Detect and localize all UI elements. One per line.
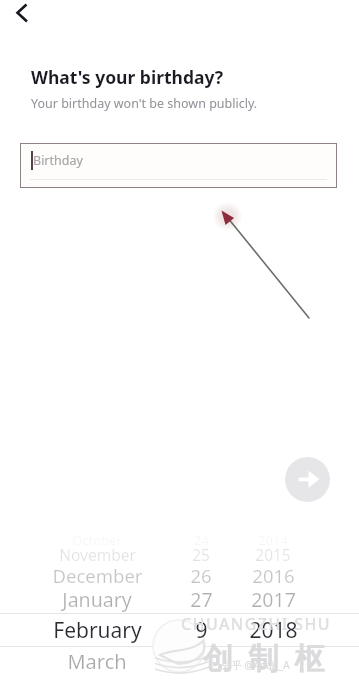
staticText: December bbox=[52, 563, 143, 588]
staticText: 知乎 @Adai__A bbox=[222, 658, 290, 672]
staticText: 25 bbox=[192, 544, 210, 565]
button[interactable]: Back bbox=[4, 0, 40, 36]
staticText: 9 bbox=[195, 616, 208, 644]
button[interactable]: Selected date February 9 2018 bbox=[0, 613, 359, 647]
staticText: January bbox=[62, 586, 132, 613]
staticText: Your birthday won't be shown publicly. bbox=[31, 95, 258, 112]
staticText: 2017 bbox=[251, 586, 296, 613]
staticText: 26 bbox=[190, 563, 212, 588]
button[interactable]: Next bbox=[285, 457, 330, 502]
staticText: Birthday bbox=[33, 152, 83, 169]
staticText: 2018 bbox=[249, 616, 298, 644]
staticText: 2015 bbox=[255, 544, 291, 565]
button[interactable]: Birthday bbox=[20, 143, 337, 188]
staticText: 27 bbox=[190, 586, 213, 613]
staticText: 2016 bbox=[252, 563, 295, 588]
staticText: November bbox=[59, 544, 136, 565]
staticText: March bbox=[67, 648, 127, 675]
staticText: 创 制 枢 bbox=[203, 637, 325, 678]
staticText: February bbox=[53, 616, 142, 644]
staticText: What's your birthday? bbox=[31, 65, 224, 89]
staticText: CHUANGZHI SHU bbox=[181, 613, 332, 635]
